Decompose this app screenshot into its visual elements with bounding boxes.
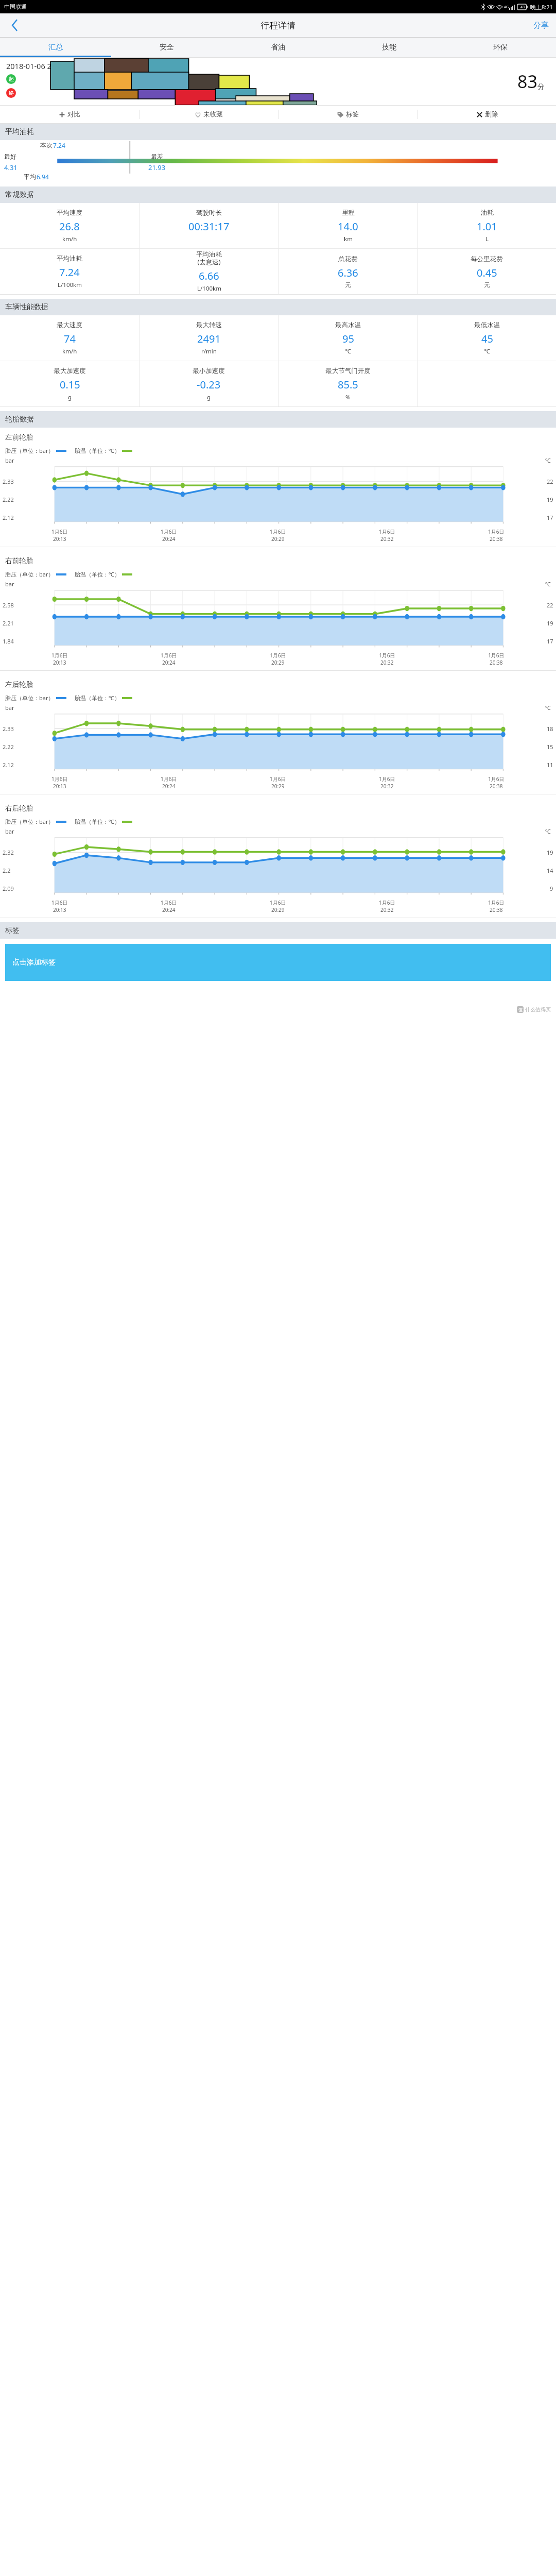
staticText: bar [5, 580, 14, 588]
button[interactable]: 最大节气门开度 [279, 361, 417, 406]
staticText: km [344, 235, 353, 243]
staticText: 17 [547, 514, 553, 521]
staticText: 2491 [197, 332, 221, 346]
staticText: 95 [342, 332, 354, 346]
staticText: L/100km [197, 284, 221, 293]
button[interactable]: 最小加速度 [140, 361, 278, 406]
staticText: 00:31:17 [188, 219, 230, 233]
staticText: 15 [547, 743, 553, 751]
staticText: 对比 [67, 110, 80, 118]
staticText: 平均油耗 [57, 255, 82, 263]
staticText: L [485, 235, 489, 243]
staticText: 平均速度 [57, 209, 82, 217]
button[interactable]: 对比 [0, 106, 139, 123]
button[interactable]: 最大速度 [0, 315, 139, 361]
staticText: g [207, 393, 211, 401]
button[interactable]: 最大加速度 [0, 361, 139, 406]
button[interactable]: 环保 [445, 38, 556, 57]
button[interactable]: 安全 [111, 38, 222, 57]
staticText: 胎压（单位：bar） [5, 694, 54, 702]
staticText: 20:29 [271, 906, 285, 913]
staticText: 18 [547, 725, 553, 733]
button[interactable]: 平均油耗 (去怠速) [140, 249, 278, 294]
button[interactable]: 驾驶时长 [140, 203, 278, 248]
staticText: 20:24 [162, 906, 176, 913]
staticText: 驾驶时长 [196, 209, 222, 217]
staticText: 最高水温 [335, 321, 361, 329]
staticText: 最大转速 [196, 321, 222, 329]
staticText: 油耗 [481, 209, 494, 217]
staticText: 1月6日 [51, 775, 68, 783]
staticText: 2.33 [3, 725, 14, 733]
staticText: 20:13 [53, 906, 66, 913]
staticText: 1月6日 [488, 528, 505, 535]
button[interactable]: 省油 [222, 38, 334, 57]
staticText: bar [5, 827, 14, 835]
staticText: 环保 [493, 43, 508, 52]
staticText: 最差 [151, 152, 163, 160]
staticText: bar [5, 704, 14, 711]
staticText: 1月6日 [161, 528, 177, 535]
staticText: 26.8 [59, 219, 80, 233]
staticText: 20:29 [271, 535, 285, 543]
button[interactable]: 未收藏 [140, 106, 278, 123]
staticText: 2018-01-06 20:13 至 20:45 [6, 61, 97, 71]
button[interactable]: 删除 [418, 106, 556, 123]
staticText: 分享 [533, 21, 549, 30]
button[interactable]: 点击添加标签 [5, 944, 551, 981]
staticText: km/h [62, 347, 77, 355]
staticText: ℃ [545, 580, 551, 588]
button[interactable]: Back [0, 13, 29, 37]
staticText: 11 [547, 761, 553, 769]
staticText: 20:29 [271, 659, 285, 666]
staticText: 17 [547, 637, 553, 645]
button[interactable]: 总花费 [279, 249, 417, 294]
staticText: 14.0 [338, 219, 358, 233]
button[interactable]: 汇总 [0, 38, 111, 57]
staticText: 胎压（单位：bar） [5, 818, 54, 825]
staticText: 85.5 [338, 378, 358, 392]
button[interactable]: 平均速度 [0, 203, 139, 248]
staticText: 7.24 [53, 141, 65, 149]
staticText: 什么值得买 [525, 1006, 551, 1013]
button[interactable]: 平均油耗 [0, 249, 139, 294]
staticText: 胎温（单位：℃） [75, 447, 120, 454]
staticText: 汇总 [48, 43, 63, 52]
button[interactable]: 油耗 [418, 203, 556, 248]
staticText: 20:24 [162, 535, 176, 543]
staticText: 1月6日 [270, 652, 286, 659]
button[interactable]: 最高水温 [279, 315, 417, 361]
staticText: 车辆性能数据 [5, 302, 48, 312]
staticText: km/h [62, 235, 77, 243]
staticText: 20:38 [490, 906, 503, 913]
button[interactable]: 最低水温 [418, 315, 556, 361]
button[interactable]: 分享 [526, 13, 556, 37]
staticText: 4.31 [4, 163, 18, 172]
staticText: 点击添加标签 [12, 958, 56, 967]
staticText: 2.09 [3, 885, 14, 892]
button[interactable]: 最大转速 [140, 315, 278, 361]
staticText: 20:32 [380, 783, 394, 790]
button[interactable]: 技能 [334, 38, 445, 57]
staticText: 平均油耗 [5, 127, 34, 137]
button[interactable]: 每公里花费 [418, 249, 556, 294]
staticText: 技能 [382, 43, 396, 52]
staticText: 元 [345, 281, 351, 289]
staticText: 20:32 [380, 535, 394, 543]
staticText: 最大加速度 [54, 367, 86, 375]
staticText: 安全 [160, 43, 174, 52]
staticText: 20:32 [380, 906, 394, 913]
staticText: 最低水温 [474, 321, 500, 329]
staticText: 45 [481, 332, 493, 346]
staticText: 1月6日 [488, 652, 505, 659]
staticText: -0.23 [197, 378, 221, 392]
staticText: 最大速度 [57, 321, 82, 329]
staticText: 晚上8:21 [530, 3, 553, 11]
button[interactable]: 标签 [279, 106, 417, 123]
button[interactable]: 里程 [279, 203, 417, 248]
staticText: 20:13 [53, 783, 66, 790]
staticText: 左前轮胎 [5, 433, 33, 442]
staticText: 20:24 [162, 659, 176, 666]
staticText: 20:29 [271, 783, 285, 790]
